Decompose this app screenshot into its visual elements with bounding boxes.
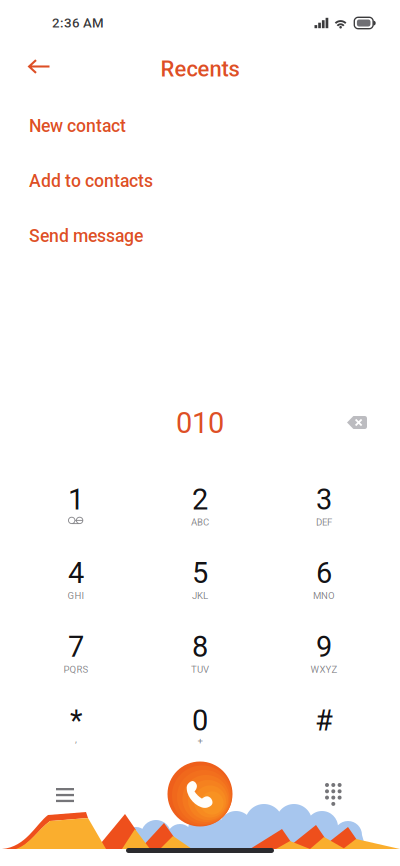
staticText: DEF [316,516,332,528]
staticText: 2 [192,482,208,516]
staticText: # [315,704,333,738]
button[interactable]: 4 [14,561,138,609]
staticText: 5 [192,556,208,590]
button[interactable]: Add to contacts [0,161,400,201]
staticText: 6 [316,556,332,590]
button[interactable]: 5 [138,561,262,609]
button[interactable]: Keypad [311,769,356,820]
button[interactable]: Call history [42,774,88,816]
staticText: 1 [68,482,84,516]
button[interactable]: 3 [262,487,386,535]
button[interactable]: 9 [262,635,386,683]
staticText: 3 [316,482,332,516]
staticText: ABC [191,516,209,528]
staticText: Recents [160,56,239,82]
staticText: 4 [68,556,84,590]
button[interactable]: Send message [0,216,400,256]
button[interactable]: 1 [14,487,138,535]
staticText: GHI [67,590,84,601]
button[interactable]: 8 [138,635,262,683]
staticText: Send message [29,226,143,246]
staticText: Add to contacts [29,171,153,191]
staticText: + [197,736,202,747]
staticText: MNO [313,590,335,601]
button[interactable]: 0 [138,709,262,757]
staticText: 8 [192,630,208,664]
button[interactable]: Back [17,48,61,84]
staticText: PQRS [63,664,88,675]
button[interactable]: # [262,709,386,757]
button[interactable]: Delete [335,403,379,441]
staticText: 010 [176,406,224,440]
button[interactable]: 6 [262,561,386,609]
button[interactable]: Call [167,761,232,826]
staticText: New contact [29,116,126,136]
button[interactable]: New contact [0,106,400,146]
staticText: TUV [191,664,209,675]
staticText: WXYZ [310,664,337,675]
staticText: JKL [192,590,208,601]
staticText: , [75,734,77,745]
staticText: * [70,704,82,738]
button[interactable]: 7 [14,635,138,683]
button[interactable]: 2 [138,487,262,535]
staticText: 0 [192,704,208,738]
staticText: 9 [316,630,332,664]
staticText: 7 [68,630,84,664]
staticText: 2:36 AM [52,15,104,31]
button[interactable]: * [14,709,138,757]
